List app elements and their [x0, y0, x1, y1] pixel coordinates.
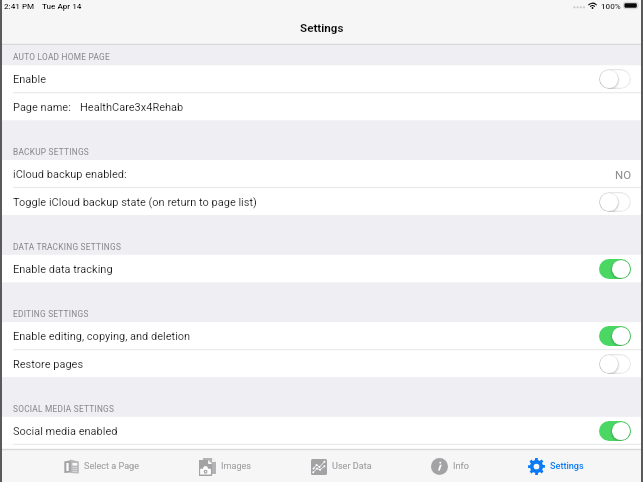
button[interactable]: Social media enabled — [0, 417, 643, 445]
button[interactable]: Select a Page — [64, 450, 140, 482]
staticText: Info — [453, 461, 469, 472]
staticText: Enable — [13, 73, 46, 86]
button[interactable]: iCloud backup enabled: — [0, 160, 643, 188]
staticText: Toggle iCloud backup state (on return to… — [13, 196, 257, 209]
staticText: iCloud backup enabled: — [13, 168, 127, 181]
button[interactable]: Info — [431, 450, 469, 482]
staticText: Select a Page — [84, 461, 140, 472]
button[interactable]: Enable data tracking — [0, 255, 643, 283]
button[interactable]: Restore pages — [599, 354, 631, 374]
button[interactable]: Enable editing, copying, and deletion — [599, 326, 631, 346]
button[interactable]: Page name: — [0, 93, 643, 121]
staticText: Social media enabled — [13, 425, 118, 438]
button[interactable]: Toggle iCloud backup state (on return to… — [0, 188, 643, 216]
staticText: 100% — [601, 1, 621, 10]
button[interactable]: Toggle iCloud backup state — [599, 192, 631, 212]
staticText: HealthCare3x4Rehab — [80, 101, 184, 114]
button[interactable]: Images — [199, 450, 252, 482]
button[interactable]: Social media enabled — [599, 421, 631, 441]
staticText: AUTO LOAD HOME PAGE — [13, 52, 110, 62]
button[interactable]: Restore pages — [0, 350, 643, 378]
staticText: BACKUP SETTINGS — [13, 147, 90, 157]
staticText: User Data — [332, 461, 372, 472]
staticText: Images — [221, 461, 252, 472]
staticText: Page name: — [13, 101, 71, 114]
button[interactable]: Enable — [0, 65, 643, 93]
button[interactable]: Enable editing, copying, and deletion — [0, 322, 643, 350]
staticText: Restore pages — [13, 358, 84, 371]
staticText: SOCIAL MEDIA SETTINGS — [13, 404, 115, 414]
staticText: EDITING SETTINGS — [13, 309, 89, 319]
staticText: Settings — [550, 461, 584, 472]
button[interactable]: Enable data tracking — [599, 259, 631, 279]
button[interactable]: Enable auto load home page — [599, 69, 631, 89]
staticText: DATA TRACKING SETTINGS — [13, 242, 122, 252]
button[interactable]: User Data — [311, 450, 372, 482]
staticText: Enable data tracking — [13, 263, 113, 276]
staticText: Tue Apr 14 — [42, 1, 82, 10]
staticText: Settings — [300, 21, 344, 35]
other: Settings — [528, 458, 545, 475]
staticText: Enable editing, copying, and deletion — [13, 330, 191, 343]
staticText: NO — [615, 168, 631, 181]
button[interactable]: Settings — [528, 450, 584, 482]
staticText: 2:41 PM — [4, 1, 35, 10]
